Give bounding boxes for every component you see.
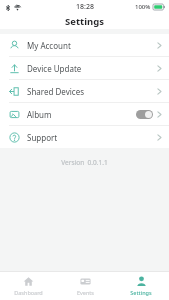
button[interactable]: Device Update	[0, 57, 169, 79]
staticText: My Account	[27, 40, 71, 51]
staticText: Settings	[65, 15, 104, 28]
button[interactable]: Album	[0, 103, 169, 125]
button[interactable]: My Account	[0, 34, 169, 56]
button[interactable]: Settings	[113, 272, 169, 300]
button[interactable]: Album toggle	[136, 110, 153, 119]
staticText: Shared Devices	[27, 86, 84, 97]
staticText: Dashboard	[14, 289, 43, 296]
button[interactable]: Dashboard	[0, 272, 57, 300]
staticText: 100%	[135, 3, 151, 11]
staticText: 18:28	[76, 2, 94, 12]
staticText: Device Update	[27, 63, 82, 74]
button[interactable]: Shared Devices	[0, 80, 169, 102]
staticText: Version 0.0.1.1	[0, 158, 169, 167]
staticText: Events	[77, 289, 94, 296]
staticText: Support	[27, 132, 58, 143]
button[interactable]: Events	[57, 272, 113, 300]
staticText: Album	[27, 109, 52, 120]
staticText: Settings	[130, 289, 152, 296]
button[interactable]: Support	[0, 126, 169, 148]
